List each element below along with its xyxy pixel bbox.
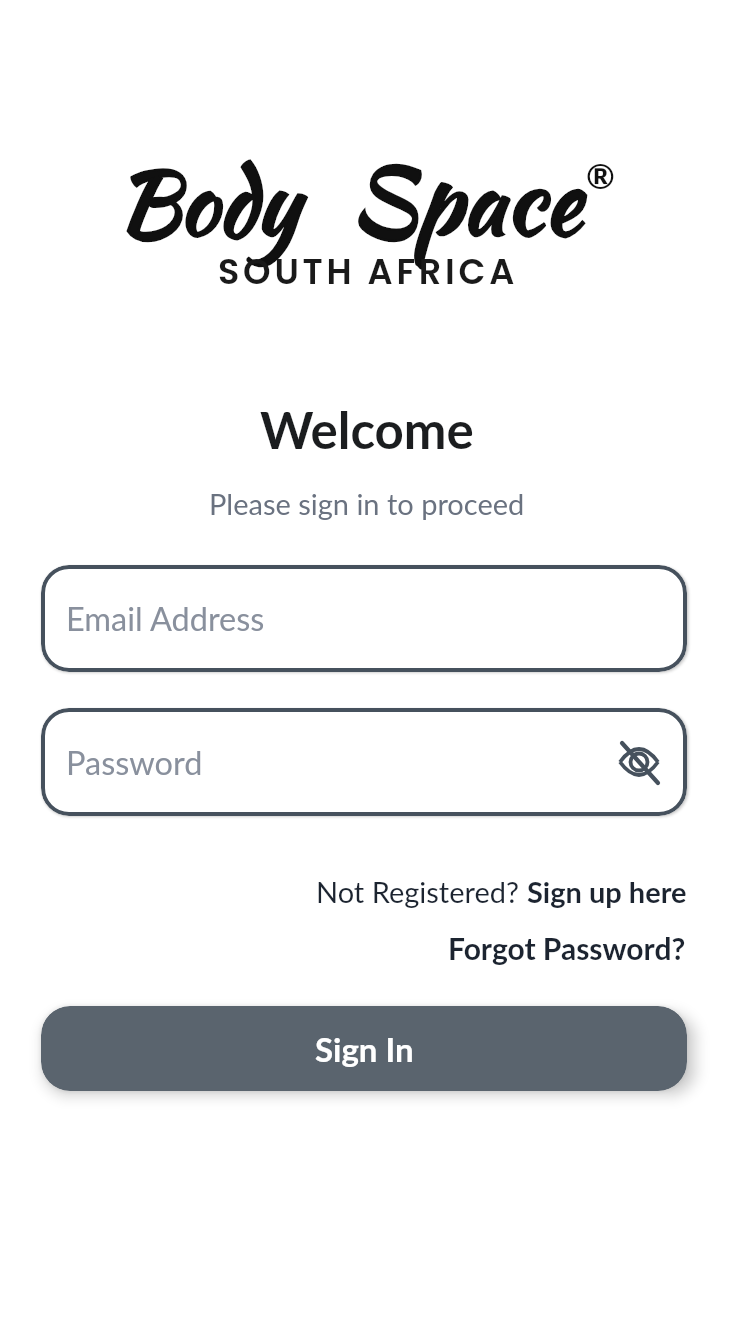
button[interactable]: Sign In (41, 1006, 687, 1091)
button[interactable]: Email Address (41, 565, 687, 672)
button[interactable]: Password (41, 708, 687, 816)
staticText: Space (350, 133, 582, 268)
staticText: Not Registered? (316, 874, 527, 909)
button[interactable] (617, 740, 661, 784)
staticText: Space (350, 133, 582, 268)
staticText: Body (116, 139, 299, 267)
staticText: Email Address (66, 599, 265, 638)
staticText: Sign up here (527, 874, 687, 909)
button[interactable]: Not Registered? (316, 874, 687, 909)
staticText: Password (66, 743, 203, 782)
staticText: Please sign in to proceed (209, 486, 525, 521)
staticText: Welcome (260, 399, 474, 460)
staticText: ® (586, 154, 615, 196)
staticText: Body (116, 139, 299, 267)
staticText: SOUTH AFRICA (218, 247, 519, 296)
button[interactable]: Forgot Password? (448, 930, 686, 966)
staticText: Sign In (315, 1029, 414, 1069)
